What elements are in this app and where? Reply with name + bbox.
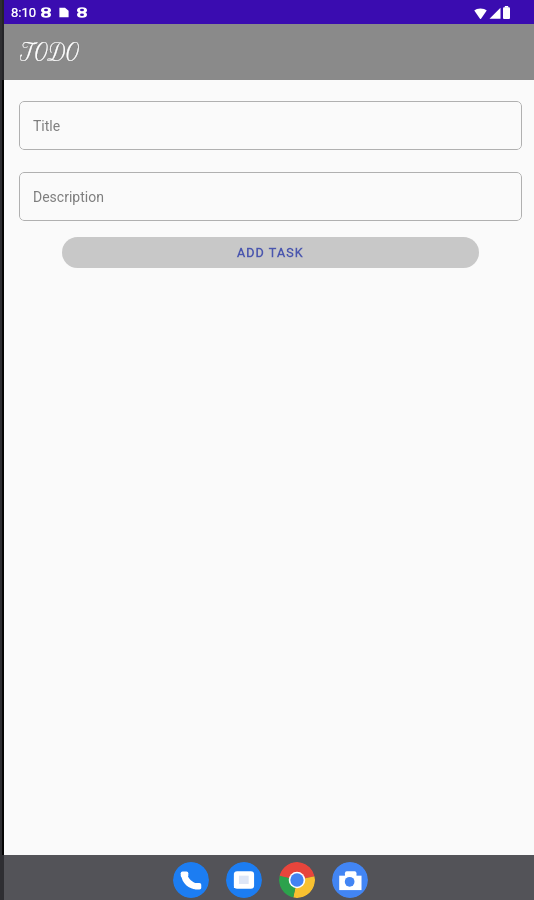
staticText: Title (33, 118, 61, 134)
staticText: TODO (20, 37, 82, 67)
staticText: Description (33, 189, 104, 205)
staticText: ADD TASK (237, 245, 304, 260)
button[interactable]: ADD TASK (62, 237, 479, 268)
button[interactable]: Camera (332, 862, 368, 898)
button[interactable]: Messages (226, 862, 262, 898)
staticText: 8:10 (11, 5, 37, 20)
button[interactable]: Chrome (279, 862, 315, 898)
button[interactable]: Title (19, 101, 522, 150)
button[interactable]: Description (19, 172, 522, 221)
button[interactable]: Phone (173, 862, 209, 898)
